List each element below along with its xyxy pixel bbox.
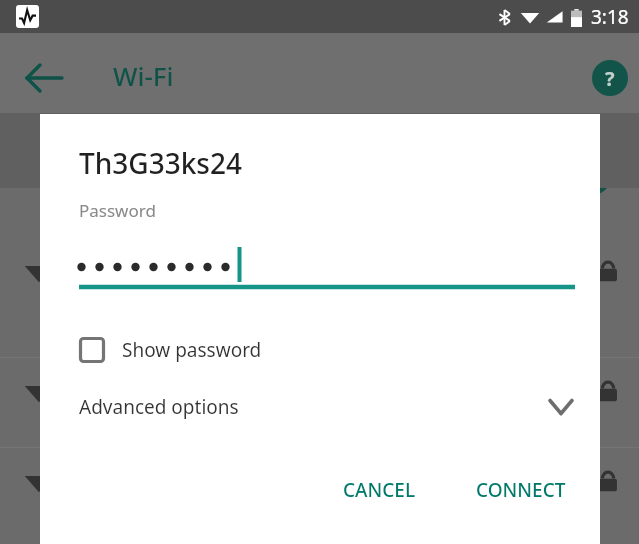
staticText: CONNECT [476,477,566,503]
button[interactable]: CANCEL [327,467,432,513]
staticText: Password [79,199,156,222]
staticText: 3:18 [591,4,629,30]
button[interactable]: Help [592,60,628,96]
staticText: CANCEL [343,477,416,503]
staticText: ? [605,65,615,92]
button[interactable] [79,240,575,300]
staticText: Advanced options [79,394,239,420]
button[interactable]: Show password [40,326,600,374]
button[interactable]: Back [24,57,66,99]
button[interactable]: CONNECT [460,467,582,513]
staticText: Show password [122,337,262,363]
staticText: Th3G33ks24 [79,144,242,182]
button[interactable]: Advanced options [40,383,600,431]
staticText: Wi-Fi [113,58,174,93]
